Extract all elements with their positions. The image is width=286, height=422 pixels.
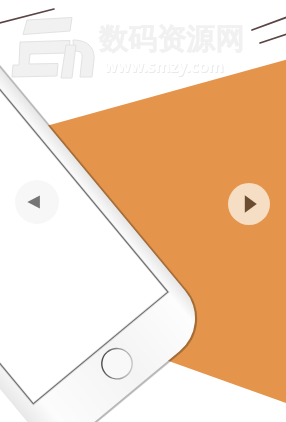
- button[interactable]: Next: [228, 183, 270, 225]
- button[interactable]: Previous: [15, 180, 59, 224]
